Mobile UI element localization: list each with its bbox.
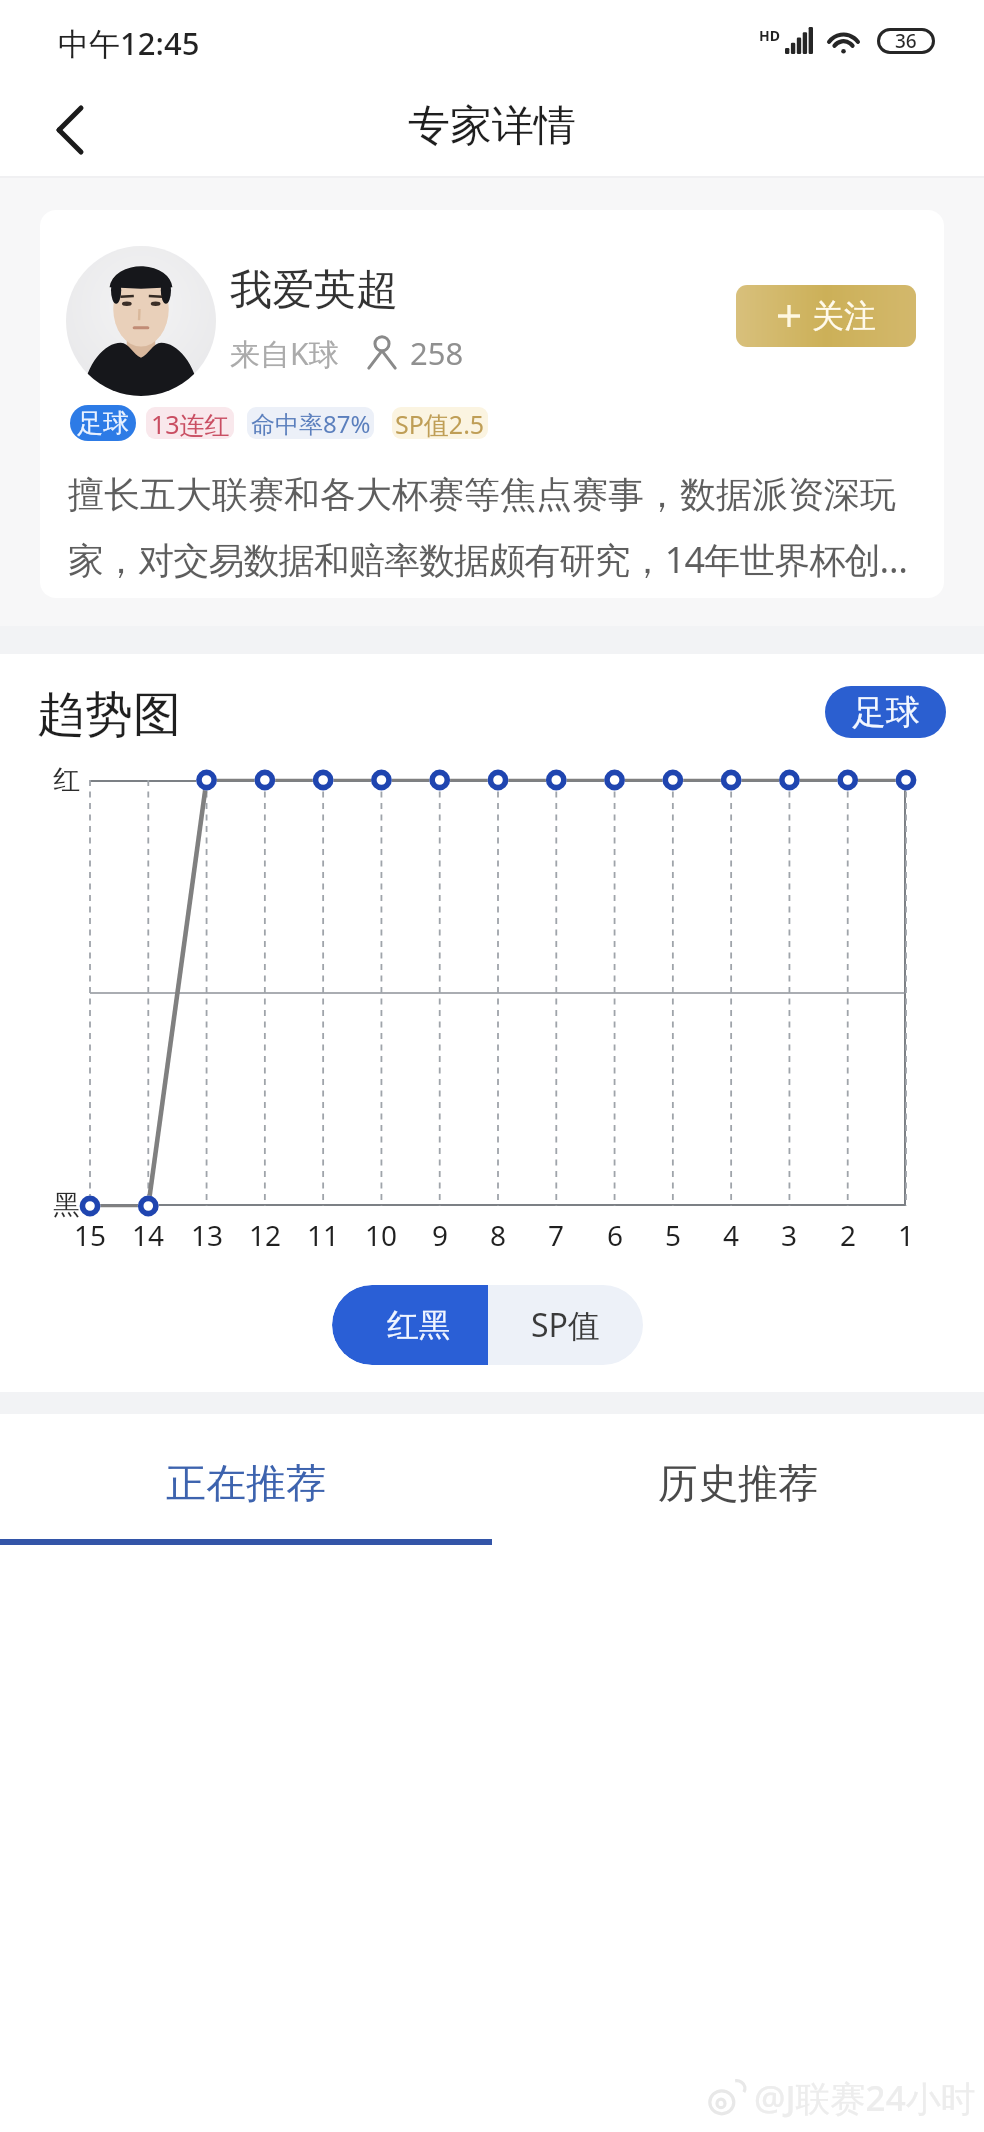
button[interactable]: 正在推荐 [0, 1414, 492, 1545]
staticText: 11 [307, 1216, 340, 1250]
staticText: 家，对交易数据和赔率数据颇有研究，14年世界杯创… [68, 535, 908, 584]
staticText: 来自K球 [230, 333, 339, 374]
staticText: 4 [723, 1216, 740, 1250]
button[interactable]: Follow [736, 285, 916, 347]
staticText: 我爱英超 [230, 264, 398, 317]
staticText: 关注 [812, 296, 876, 336]
staticText: 12 [249, 1216, 282, 1250]
staticText: 1 [898, 1216, 915, 1250]
staticText: 7 [548, 1216, 565, 1250]
staticText: 258 [410, 332, 464, 374]
staticText: 3 [781, 1216, 798, 1250]
button[interactable]: 我爱英超 [40, 210, 944, 598]
staticText: 14 [132, 1216, 165, 1250]
staticText: 专家详情 [408, 100, 576, 153]
staticText: 6 [607, 1216, 624, 1250]
staticText: 历史推荐 [658, 1458, 818, 1508]
staticText: 36 [895, 28, 917, 54]
staticText: 红 [53, 763, 80, 795]
staticText: 中午12:45 [58, 22, 200, 64]
button[interactable]: 红黑 [332, 1285, 488, 1365]
staticText: 10 [365, 1216, 398, 1250]
staticText: 9 [432, 1216, 449, 1250]
staticText: 趋势图 [37, 685, 181, 745]
button[interactable]: 历史推荐 [492, 1414, 984, 1545]
staticText: 13连红 [151, 407, 230, 439]
staticText: 足球 [852, 691, 920, 734]
staticText: 13 [191, 1216, 224, 1250]
staticText: SP值 [531, 1303, 600, 1347]
button[interactable]: 足球 [825, 686, 946, 738]
staticText: 擅长五大联赛和各大杯赛等焦点赛事，数据派资深玩 [68, 472, 896, 517]
staticText: SP值2.5 [395, 407, 485, 439]
staticText: 红黑 [387, 1305, 451, 1345]
staticText: 正在推荐 [166, 1458, 326, 1508]
staticText: 命中率87% [251, 407, 371, 439]
staticText: 5 [665, 1216, 682, 1250]
staticText: 2 [840, 1216, 857, 1250]
button[interactable]: SP值 [488, 1285, 643, 1365]
staticText: 黑 [53, 1188, 80, 1220]
staticText: 8 [490, 1216, 507, 1250]
staticText: 足球 [77, 407, 129, 440]
staticText: HD [759, 26, 780, 45]
staticText: @J联赛24小时 [754, 2074, 976, 2122]
button[interactable]: Back [34, 91, 106, 169]
staticText: 15 [74, 1216, 107, 1250]
